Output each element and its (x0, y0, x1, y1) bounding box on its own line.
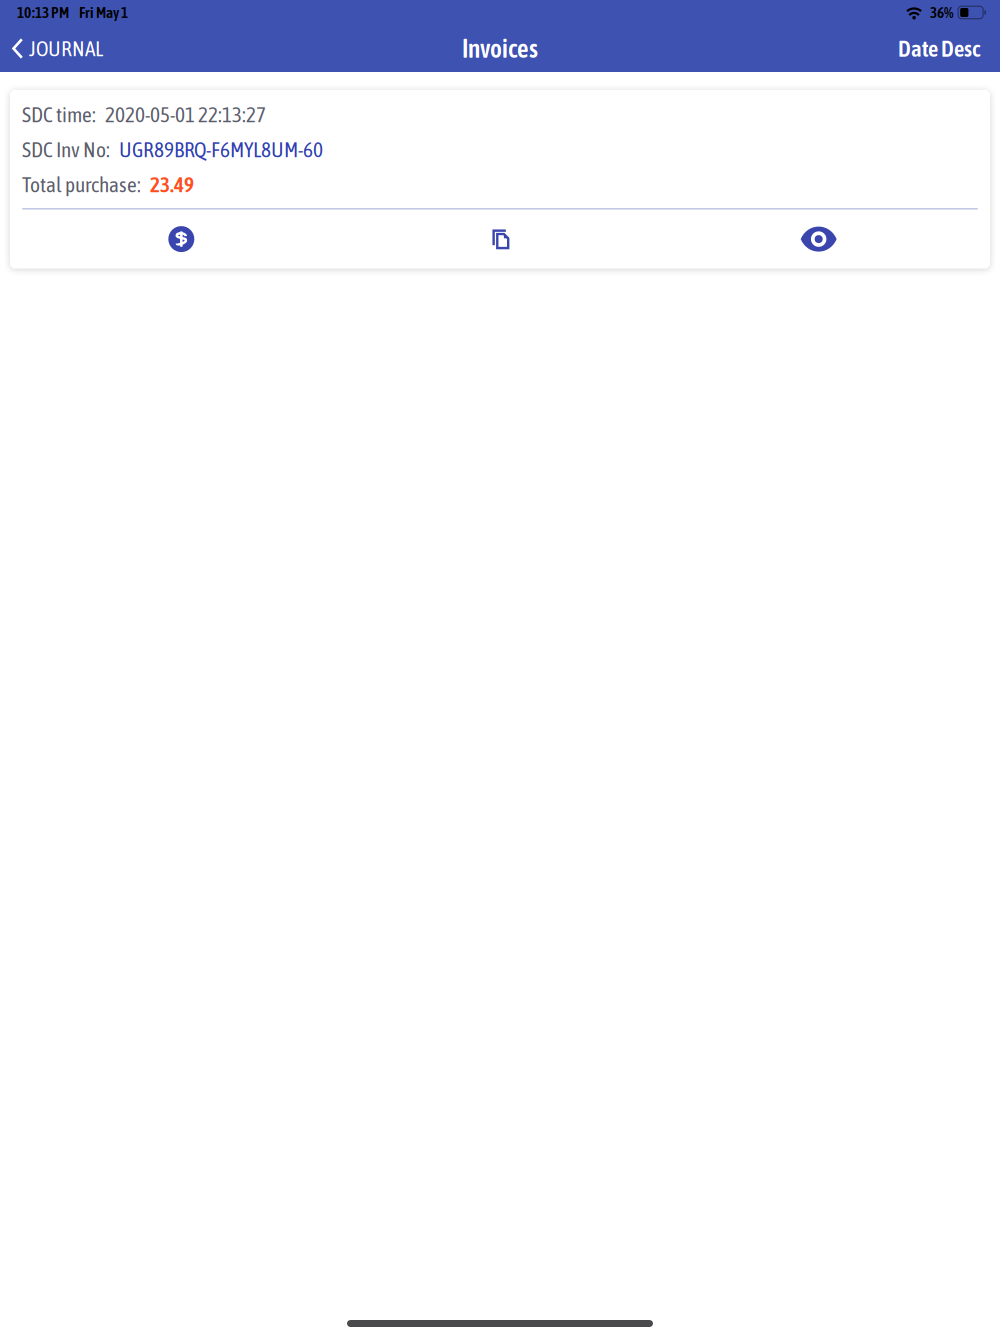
staticText: 10:13 PM (17, 4, 69, 21)
staticText: Fri May 1 (79, 4, 128, 21)
staticText: JOURNAL (29, 36, 103, 61)
button[interactable]: JOURNAL (0, 25, 115, 72)
button[interactable]: Copy invoice number (341, 210, 659, 269)
staticText: 36% (930, 4, 954, 21)
staticText: Date Desc (898, 35, 980, 61)
staticText: SDC time: (22, 102, 96, 127)
staticText: Total purchase: (22, 172, 141, 197)
staticText: 2020-05-01 22:13:27 (105, 102, 266, 127)
staticText: SDC Inv No: (22, 137, 110, 162)
button[interactable]: Payments (22, 210, 341, 269)
staticText: 23.49 (150, 172, 194, 197)
staticText: Invoices (462, 34, 538, 63)
button[interactable]: Date Desc (878, 25, 1000, 72)
button[interactable]: View invoice (659, 210, 978, 269)
staticText: UGR89BRQ-F6MYL8UM-60 (119, 137, 323, 162)
